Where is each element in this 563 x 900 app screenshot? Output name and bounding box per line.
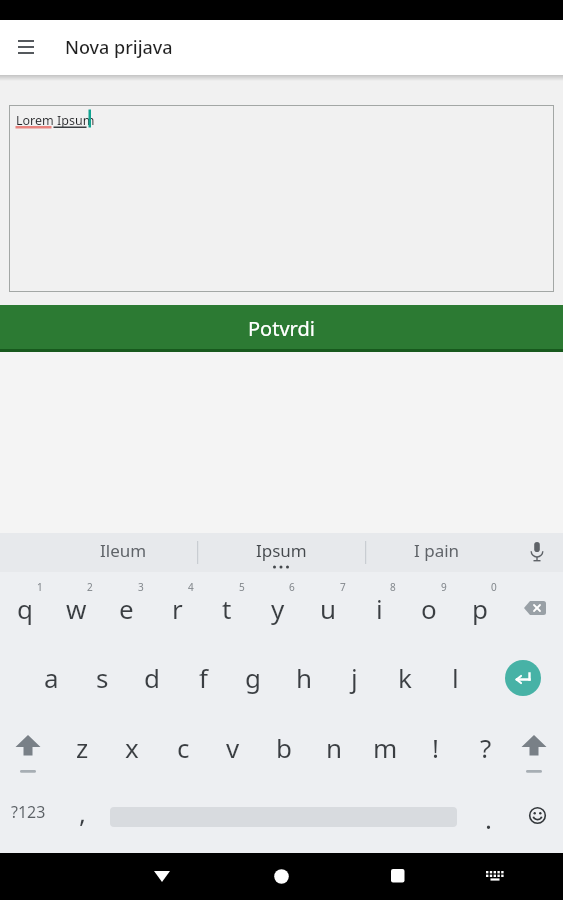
- staticText: ?123: [11, 801, 46, 823]
- button[interactable]: g: [228, 652, 278, 702]
- staticText: d: [144, 660, 160, 695]
- button[interactable]: Potvrdi: [0, 305, 563, 352]
- staticText: e: [119, 591, 134, 626]
- button[interactable]: [10, 31, 42, 63]
- button[interactable]: Ileum: [73, 533, 173, 568]
- button[interactable]: c: [158, 722, 208, 772]
- button[interactable]: Ipsum: [231, 533, 331, 568]
- staticText: m: [373, 730, 398, 765]
- staticText: 0: [491, 580, 497, 594]
- button[interactable]: l: [430, 652, 480, 702]
- button[interactable]: i: [354, 583, 404, 633]
- staticText: ?: [480, 730, 492, 765]
- staticText: 4: [188, 580, 194, 594]
- button[interactable]: ,: [62, 787, 102, 837]
- button[interactable]: Lorem Ipsum: [9, 105, 554, 292]
- staticText: x: [125, 730, 139, 765]
- button[interactable]: s: [77, 652, 127, 702]
- button[interactable]: a: [26, 652, 76, 702]
- staticText: s: [96, 660, 109, 695]
- button[interactable]: n: [309, 722, 359, 772]
- button[interactable]: h: [279, 652, 329, 702]
- button[interactable]: [3, 712, 53, 782]
- staticText: 5: [239, 580, 245, 594]
- button[interactable]: r: [152, 583, 202, 633]
- button[interactable]: w: [51, 583, 101, 633]
- button[interactable]: [475, 856, 515, 896]
- button[interactable]: o: [404, 583, 454, 633]
- staticText: p: [472, 591, 488, 626]
- staticText: Lorem Ipsum: [16, 112, 95, 129]
- staticText: f: [199, 660, 208, 695]
- staticText: a: [44, 660, 59, 695]
- staticText: g: [245, 660, 261, 695]
- staticText: z: [76, 730, 89, 765]
- button[interactable]: ?123: [2, 787, 54, 837]
- button[interactable]: [509, 712, 559, 782]
- staticText: .: [485, 801, 492, 836]
- button[interactable]: b: [259, 722, 309, 772]
- button[interactable]: v: [208, 722, 258, 772]
- staticText: Nova prijava: [65, 35, 173, 60]
- button[interactable]: m: [360, 722, 410, 772]
- staticText: 1: [37, 580, 43, 594]
- staticText: Ipsum: [256, 539, 307, 562]
- button[interactable]: [142, 856, 182, 896]
- staticText: Ileum: [100, 539, 147, 562]
- button[interactable]: [378, 856, 418, 896]
- staticText: u: [320, 591, 337, 626]
- staticText: h: [296, 660, 313, 695]
- staticText: 3: [138, 580, 144, 594]
- staticText: k: [398, 660, 412, 695]
- staticText: t: [222, 591, 232, 626]
- staticText: c: [177, 730, 190, 765]
- button[interactable]: ?: [461, 722, 511, 772]
- staticText: !: [432, 730, 439, 765]
- staticText: 2: [87, 580, 93, 594]
- staticText: l: [452, 660, 459, 695]
- button[interactable]: !: [410, 722, 460, 772]
- staticText: b: [276, 730, 292, 765]
- staticText: I pain: [414, 539, 460, 562]
- button[interactable]: .: [468, 793, 508, 843]
- staticText: w: [66, 591, 87, 626]
- button[interactable]: d: [127, 652, 177, 702]
- button[interactable]: u: [303, 583, 353, 633]
- staticText: ,: [79, 795, 86, 830]
- staticText: q: [17, 591, 33, 626]
- staticText: 6: [289, 580, 295, 594]
- button[interactable]: [510, 583, 560, 633]
- button[interactable]: [505, 660, 541, 696]
- button[interactable]: x: [107, 722, 157, 772]
- staticText: Potvrdi: [248, 315, 315, 342]
- staticText: y: [271, 591, 285, 626]
- staticText: r: [172, 591, 183, 626]
- button[interactable]: j: [329, 652, 379, 702]
- staticText: n: [326, 730, 343, 765]
- button[interactable]: p: [455, 583, 505, 633]
- staticText: j: [351, 660, 358, 695]
- staticText: i: [376, 591, 383, 626]
- button[interactable]: I pain: [387, 533, 487, 568]
- button[interactable]: e: [101, 583, 151, 633]
- button[interactable]: t: [202, 583, 252, 633]
- staticText: o: [421, 591, 437, 626]
- staticText: 9: [441, 580, 447, 594]
- staticText: v: [226, 730, 240, 765]
- button[interactable]: q: [0, 583, 50, 633]
- button[interactable]: [517, 795, 557, 835]
- staticText: 7: [340, 580, 346, 594]
- button[interactable]: z: [57, 722, 107, 772]
- button[interactable]: y: [253, 583, 303, 633]
- button[interactable]: f: [178, 652, 228, 702]
- staticText: 8: [390, 580, 396, 594]
- button[interactable]: [261, 856, 301, 896]
- button[interactable]: k: [380, 652, 430, 702]
